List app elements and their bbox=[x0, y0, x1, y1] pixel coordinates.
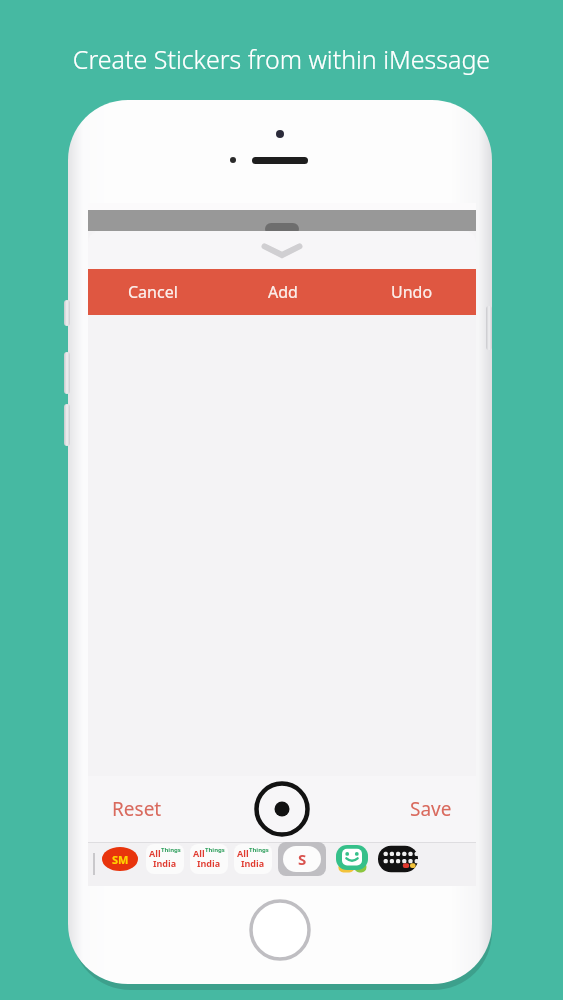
button[interactable]: Add bbox=[218, 269, 347, 315]
button[interactable]: Home bbox=[248, 898, 312, 962]
button[interactable]: Reset bbox=[102, 788, 172, 830]
staticText: Reset bbox=[112, 796, 162, 822]
button[interactable]: Messages stickers bbox=[332, 843, 372, 875]
staticText: Save bbox=[410, 796, 452, 822]
button[interactable]: Collapse bbox=[88, 231, 476, 269]
staticText: All bbox=[149, 847, 161, 859]
button[interactable]: All Things India stickers bbox=[190, 844, 228, 874]
staticText: S bbox=[298, 849, 307, 869]
button[interactable]: All Things India stickers bbox=[234, 844, 272, 874]
button[interactable]: Save bbox=[400, 788, 462, 830]
staticText: Create Stickers from within iMessage bbox=[0, 42, 563, 76]
button[interactable]: SM app bbox=[100, 845, 140, 873]
staticText: India bbox=[153, 857, 177, 869]
button[interactable]: Cancel bbox=[88, 269, 218, 315]
staticText: Things bbox=[161, 846, 181, 854]
button[interactable]: Undo bbox=[347, 269, 476, 315]
staticText: All bbox=[237, 847, 249, 859]
staticText: Undo bbox=[391, 281, 433, 303]
staticText: Things bbox=[249, 846, 269, 854]
button[interactable]: Keyboard bbox=[378, 844, 418, 874]
staticText: India bbox=[197, 857, 221, 869]
other: Collapse bbox=[259, 241, 305, 259]
staticText: Cancel bbox=[128, 281, 178, 303]
button[interactable]: Sticker maker, selected bbox=[278, 842, 326, 876]
staticText: Add bbox=[268, 281, 298, 303]
button[interactable]: Capture bbox=[254, 781, 310, 837]
staticText: India bbox=[241, 857, 265, 869]
staticText: All bbox=[193, 847, 205, 859]
staticText: SM bbox=[112, 852, 129, 867]
staticText: Things bbox=[205, 846, 225, 854]
button[interactable]: All Things India stickers bbox=[146, 844, 184, 874]
